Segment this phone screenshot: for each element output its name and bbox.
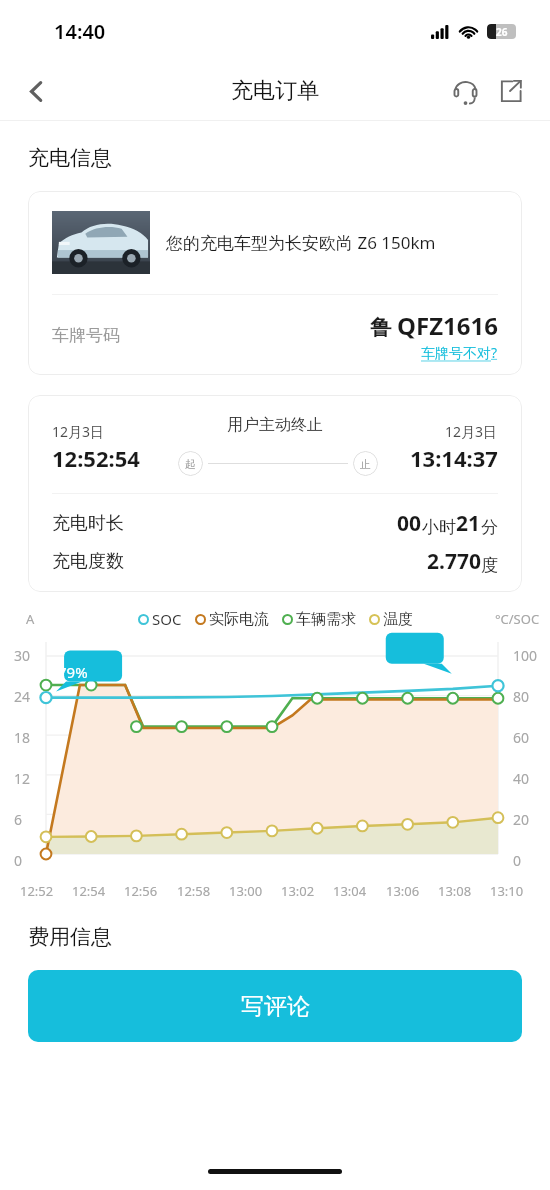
staticText: 21 [456,509,481,538]
staticText: 写评论 [241,992,310,1021]
button[interactable]: Customer service [442,68,488,114]
staticText: 12:54 [72,882,106,900]
staticText: 100 [513,646,538,665]
staticText: 12:52:54 [52,443,140,473]
staticText: 30 [14,646,31,665]
staticText: 12:56 [124,882,158,900]
staticText: 费用信息 [28,924,112,950]
staticText: SOC [152,609,182,629]
staticText: 温度 [383,610,413,629]
staticText: 12月3日 [52,422,105,441]
staticText: 13:00 [229,882,263,900]
staticText: 您的充电车型为长安欧尚 Z6 150km [166,231,436,254]
staticText: 0 [14,851,23,870]
staticText: 实际电流 [209,610,269,629]
staticText: 止 [360,457,371,471]
button[interactable]: Back [10,65,62,117]
staticText: °C/SOC [495,610,540,628]
staticText: 13:08 [438,882,472,900]
staticText: 车辆需求 [296,610,356,629]
staticText: 13:10 [490,882,524,900]
staticText: 12 [14,769,31,788]
staticText: 12:52 [20,882,54,900]
staticText: 00 [397,509,422,538]
staticText: 60 [513,728,530,747]
staticText: 车牌号不对? [421,343,498,362]
staticText: 小时 [422,517,456,538]
staticText: 13:14:37 [410,443,498,473]
staticText: 12:58 [177,882,211,900]
staticText: 14:40 [54,18,106,45]
staticText: 20 [513,810,530,829]
button[interactable]: 您的充电车型为长安欧尚 Z6 150km [28,191,522,375]
staticText: 12月3日 [445,422,498,441]
staticText: 分 [481,517,498,538]
staticText: 充电时长 [52,512,124,535]
staticText: 6 [14,810,23,829]
button[interactable]: Share [488,68,534,114]
button[interactable]: 车牌号不对? [421,343,498,362]
staticText: 车牌号码 [52,325,120,346]
staticText: 18 [14,728,31,747]
staticText: 充电信息 [28,145,112,171]
staticText: 用户主动终止 [227,415,323,435]
staticText: 26 [496,25,508,39]
staticText: 充电订单 [231,77,319,105]
staticText: 40 [513,769,530,788]
staticText: 79% [58,662,88,682]
staticText: 0 [513,851,522,870]
staticText: 24 [14,687,31,706]
staticText: 13:04 [333,882,367,900]
staticText: 80 [513,687,530,706]
staticText: 起 [185,457,196,471]
staticText: 2.770 [427,547,481,576]
staticText: QFZ1616 [397,309,498,342]
staticText: A [26,610,35,628]
staticText: 度 [481,555,498,576]
staticText: 13:02 [281,882,315,900]
staticText: 13:06 [386,882,420,900]
button[interactable]: 写评论 [28,970,522,1042]
staticText: 充电度数 [52,550,124,573]
staticText: 85% [450,652,480,672]
staticText: 鲁 [370,313,397,342]
